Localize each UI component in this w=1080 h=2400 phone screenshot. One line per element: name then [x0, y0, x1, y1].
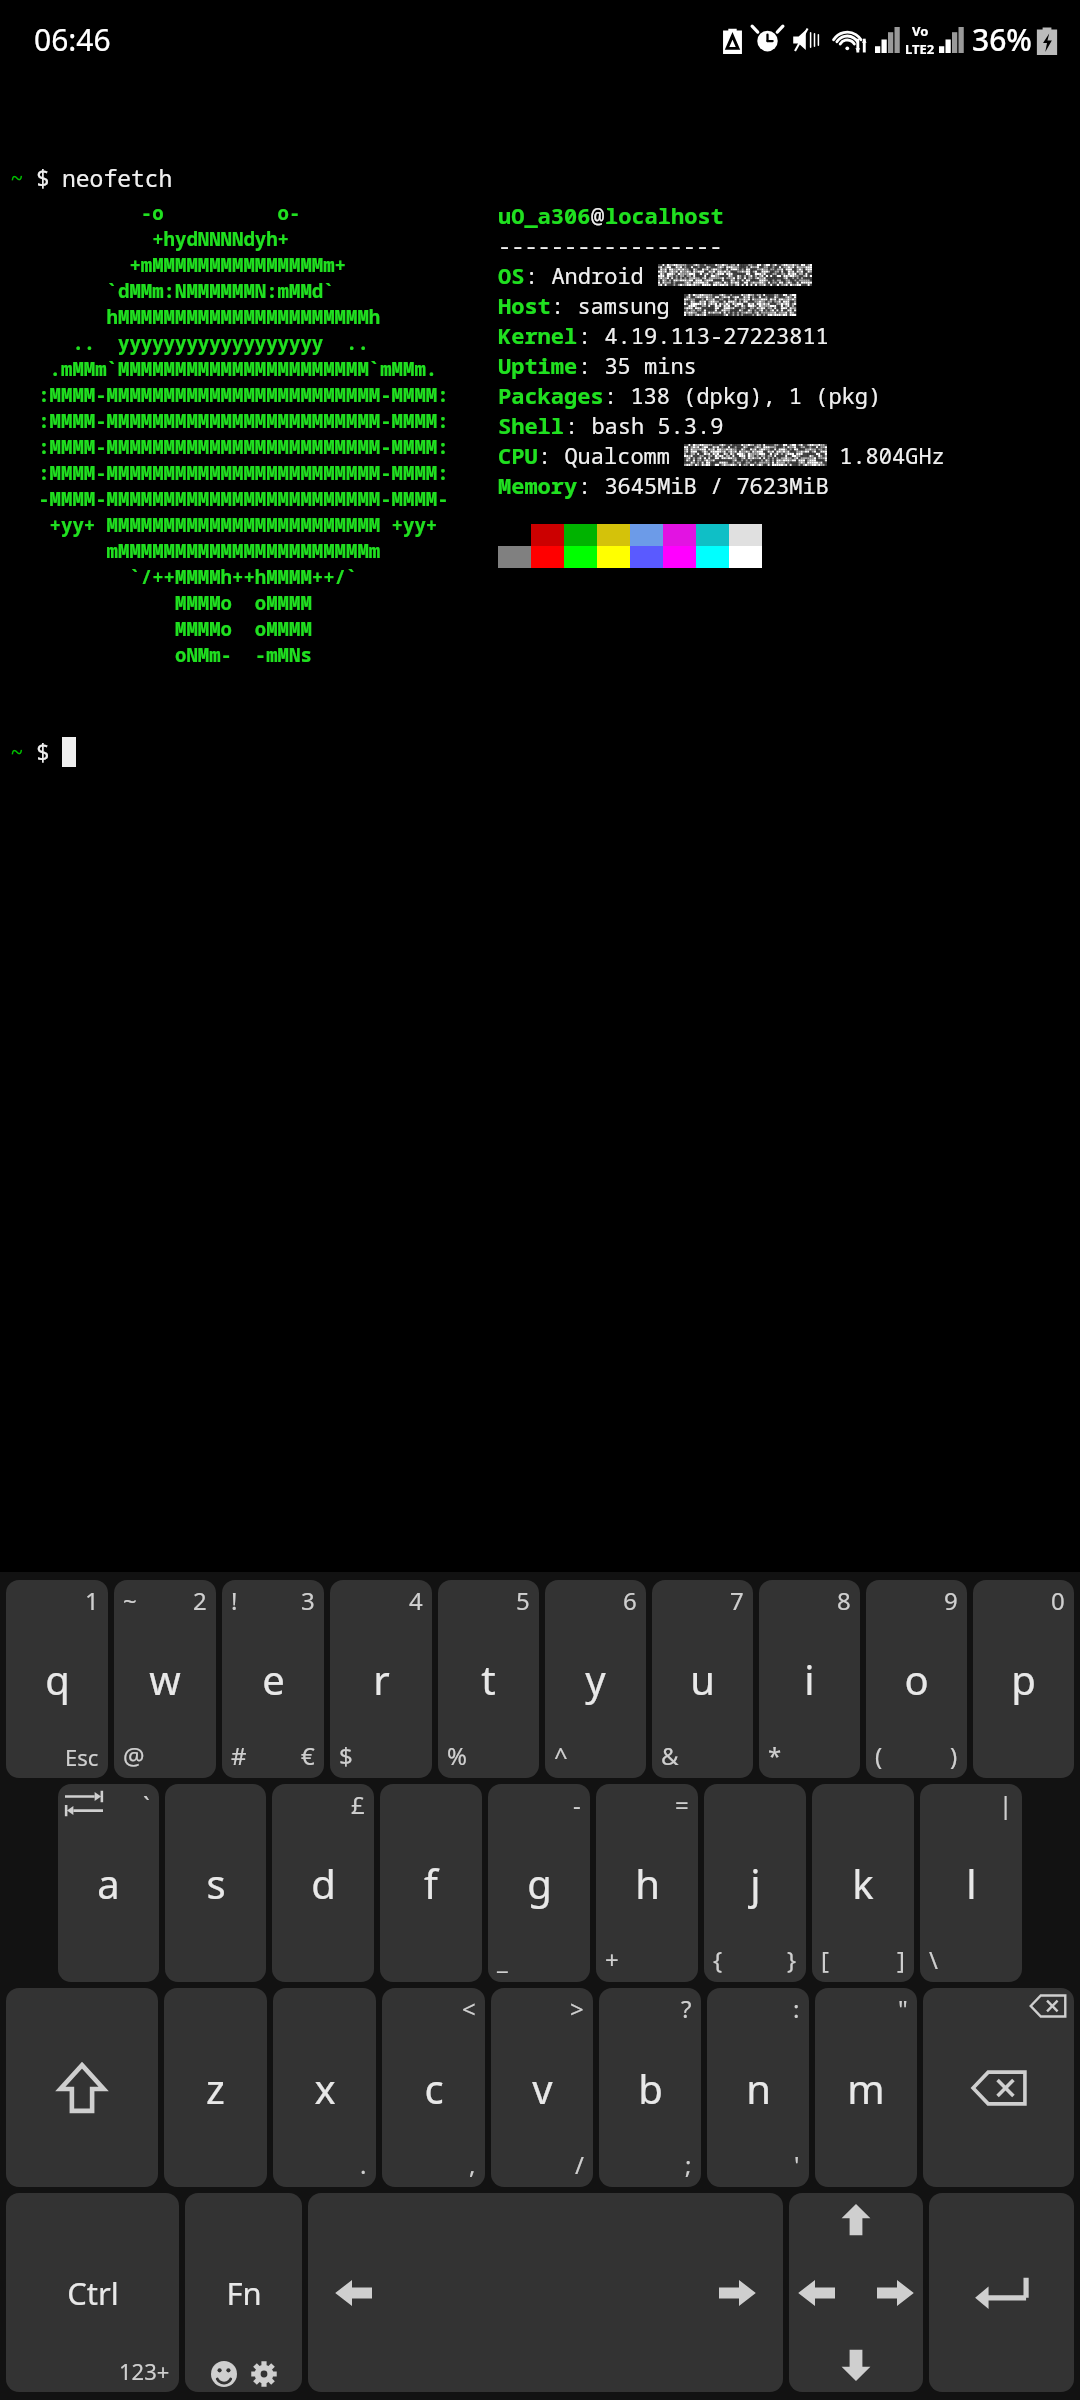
staticText: u: [690, 1652, 715, 1706]
button[interactable]: Ctrl: [6, 2193, 179, 2392]
staticText: #: [231, 1739, 247, 1772]
staticText: mMMMMMMMMMMMMMMMMMMMMMMm: [4, 538, 381, 564]
staticText: \: [929, 1943, 938, 1976]
staticText: Host: [498, 290, 551, 320]
staticText: : 35 mins: [578, 350, 697, 380]
button[interactable]: s: [165, 1784, 266, 1982]
button[interactable]: z: [164, 1988, 267, 2187]
button[interactable]: v: [491, 1988, 593, 2187]
staticText: w: [149, 1652, 181, 1706]
staticText: p: [1011, 1652, 1036, 1706]
staticText: -MMMM-MMMMMMMMMMMMMMMMMMMMMMMM-MMMM-: [4, 486, 449, 512]
button[interactable]: k: [812, 1784, 914, 1982]
staticText: :MMMM-MMMMMMMMMMMMMMMMMMMMMMMM-MMMM:: [4, 434, 449, 460]
button[interactable]: d: [272, 1784, 374, 1982]
staticText: MMMMo oMMMM: [4, 590, 312, 616]
staticText: (: [875, 1739, 883, 1772]
staticText: Packages: [498, 380, 604, 410]
staticText: @: [591, 200, 605, 230]
staticText: 4: [409, 1584, 423, 1617]
staticText: +mMMMMMMMMMMMMMMMm+: [4, 252, 347, 278]
button[interactable]: shift: [6, 1988, 158, 2187]
button[interactable]: space: [308, 2193, 783, 2392]
staticText: +yy+ MMMMMMMMMMMMMMMMMMMMMMMM +yy+: [4, 512, 438, 538]
staticText: Shell: [498, 410, 565, 440]
staticText: £: [351, 1788, 365, 1821]
button[interactable]: g: [488, 1784, 590, 1982]
button[interactable]: enter: [929, 2193, 1074, 2392]
staticText: 06:46: [34, 19, 111, 60]
button[interactable]: x: [273, 1988, 376, 2187]
button[interactable]: w: [114, 1580, 216, 1778]
staticText: LTE2: [905, 40, 935, 58]
staticText: ": [898, 1992, 908, 2025]
staticText: -----------------: [498, 230, 723, 260]
button[interactable]: dpad: [789, 2193, 923, 2392]
staticText: :MMMM-MMMMMMMMMMMMMMMMMMMMMMMM-MMMM:: [4, 408, 449, 434]
staticText: !: [231, 1584, 238, 1617]
staticText: `: [143, 1788, 150, 1821]
staticText: ]: [897, 1943, 905, 1976]
staticText: 9: [944, 1584, 958, 1617]
button[interactable]: f: [380, 1784, 482, 1982]
button[interactable]: r: [330, 1580, 432, 1778]
staticText: a: [97, 1856, 120, 1910]
staticText: @: [123, 1739, 145, 1772]
button[interactable]: p: [973, 1580, 1074, 1778]
staticText: 36%: [972, 19, 1032, 60]
staticText: Memory: [498, 470, 578, 500]
staticText: q: [45, 1652, 70, 1706]
button[interactable]: y: [545, 1580, 646, 1778]
button[interactable]: u: [652, 1580, 753, 1778]
staticText: 0: [1051, 1584, 1065, 1617]
button[interactable]: i: [759, 1580, 860, 1778]
staticText: n: [746, 2061, 771, 2115]
staticText: ;: [685, 2148, 692, 2181]
staticText: :MMMM-MMMMMMMMMMMMMMMMMMMMMMMM-MMMM:: [4, 460, 449, 486]
staticText: : bash 5.3.9: [565, 410, 724, 440]
staticText: r: [373, 1652, 390, 1706]
button[interactable]: bksp: [923, 1988, 1074, 2187]
staticText: : Qualcomm: [538, 440, 684, 470]
staticText: :: [793, 1992, 800, 2025]
staticText: ): [950, 1739, 958, 1772]
staticText: 5: [516, 1584, 530, 1617]
staticText: 3: [301, 1584, 315, 1617]
staticText: s: [206, 1856, 226, 1910]
staticText: b: [638, 2061, 663, 2115]
button[interactable]: t: [438, 1580, 539, 1778]
staticText: <: [462, 1992, 476, 2025]
staticText: MMMMo oMMMM: [4, 616, 312, 642]
staticText: c: [424, 2061, 444, 2115]
staticText: neofetch: [62, 162, 173, 193]
staticText: Esc: [65, 1742, 99, 1772]
staticText: =: [675, 1788, 689, 1821]
staticText: Ctrl: [67, 2272, 119, 2314]
button[interactable]: m: [815, 1988, 917, 2187]
staticText: 2: [193, 1584, 207, 1617]
staticText: .mMMm`MMMMMMMMMMMMMMMMMMMMMM`mMMm.: [4, 356, 438, 382]
button[interactable]: j: [704, 1784, 806, 1982]
staticText: d: [311, 1856, 336, 1910]
button[interactable]: o: [866, 1580, 967, 1778]
staticText: 123+: [119, 2356, 170, 2386]
staticText: ~: [10, 162, 24, 193]
staticText: ^: [554, 1739, 568, 1772]
button[interactable]: n: [707, 1988, 809, 2187]
button[interactable]: l: [920, 1784, 1022, 1982]
button[interactable]: Fn: [185, 2193, 302, 2392]
button[interactable]: a: [58, 1784, 159, 1982]
button[interactable]: b: [599, 1988, 701, 2187]
staticText: $: [36, 736, 50, 767]
staticText: &: [661, 1739, 679, 1772]
staticText: |: [999, 1788, 1013, 1821]
staticText: $: [339, 1739, 353, 1772]
button[interactable]: e: [222, 1580, 324, 1778]
staticText: Vo: [912, 22, 929, 40]
button[interactable]: q: [6, 1580, 108, 1778]
button[interactable]: c: [382, 1988, 485, 2187]
staticText: `dMMm:NMMMMMMN:mMMd`: [4, 278, 335, 304]
staticText: i: [804, 1652, 815, 1706]
button[interactable]: h: [596, 1784, 698, 1982]
staticText: o: [904, 1652, 929, 1706]
